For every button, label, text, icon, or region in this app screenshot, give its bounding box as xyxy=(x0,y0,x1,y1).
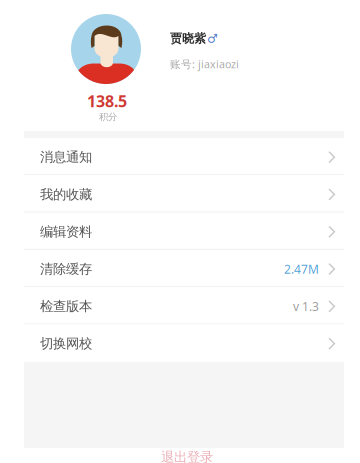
staticText: 清除缓存 xyxy=(40,261,92,277)
staticText: 账号: jiaxiaozi xyxy=(170,57,239,71)
staticText: 我的收藏 xyxy=(40,186,92,203)
staticText: 退出登录 xyxy=(161,449,213,463)
button[interactable]: 消息通知 xyxy=(24,138,344,175)
staticText: 2.47M xyxy=(284,261,319,277)
staticText: ♂ xyxy=(207,32,218,45)
button[interactable]: 清除缓存 xyxy=(24,250,344,287)
button[interactable]: 退出登录 xyxy=(127,449,247,463)
staticText: v 1.3 xyxy=(293,298,319,314)
button[interactable]: 我的收藏 xyxy=(24,175,344,213)
button[interactable]: 编辑资料 xyxy=(24,213,344,250)
button[interactable]: 切换网校 xyxy=(24,324,344,362)
staticText: 检查版本 xyxy=(40,298,92,315)
staticText: 切换网校 xyxy=(40,335,92,352)
staticText: 贾晓紫 xyxy=(170,31,206,46)
staticText: 138.5 xyxy=(87,90,127,112)
staticText: 消息通知 xyxy=(40,149,92,165)
button[interactable]: 检查版本 xyxy=(24,287,344,324)
staticText: 积分 xyxy=(99,111,117,123)
staticText: 编辑资料 xyxy=(40,224,92,240)
